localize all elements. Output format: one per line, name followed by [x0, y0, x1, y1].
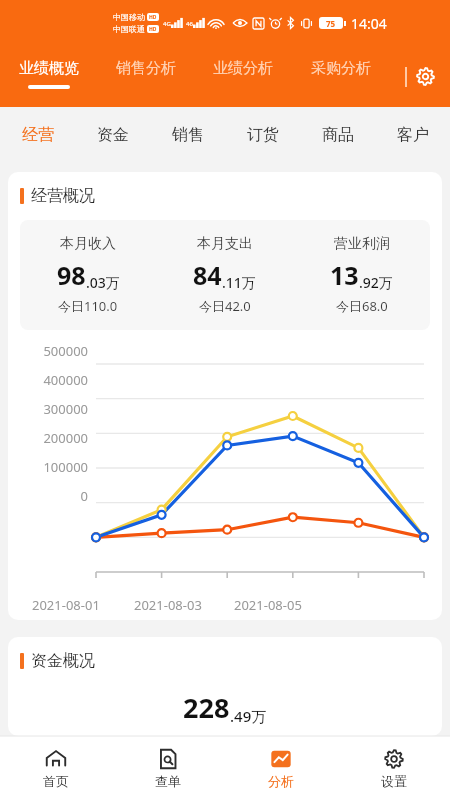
button[interactable]: 营业利润: [293, 220, 430, 330]
button[interactable]: 首页: [0, 736, 112, 800]
staticText: 设置: [381, 773, 407, 789]
staticText: 业绩概览: [19, 59, 79, 78]
staticText: 销售: [172, 125, 204, 145]
staticText: 订货: [247, 125, 279, 145]
button[interactable]: 采购分析: [292, 45, 390, 107]
staticText: 0: [80, 487, 88, 505]
staticText: 400000: [43, 371, 88, 389]
button[interactable]: 业绩分析: [194, 45, 292, 107]
staticText: 4G: [163, 20, 171, 28]
button[interactable]: 分析: [224, 736, 337, 800]
staticText: .49万: [230, 706, 267, 726]
staticText: 营业利润: [334, 235, 390, 253]
button[interactable]: 资金: [75, 107, 150, 162]
button[interactable]: 经营: [0, 107, 75, 162]
staticText: HD: [149, 26, 157, 33]
staticText: 中国移动: [113, 12, 145, 22]
staticText: 分析: [268, 773, 294, 789]
button[interactable]: 业绩概览: [0, 45, 97, 107]
staticText: 首页: [43, 773, 69, 789]
staticText: 查单: [155, 773, 181, 789]
staticText: 98: [57, 258, 86, 292]
staticText: 客户: [397, 125, 429, 145]
staticText: 14:04: [351, 14, 387, 33]
button[interactable]: 订货: [225, 107, 300, 162]
staticText: 84: [193, 258, 222, 292]
staticText: 13: [330, 258, 359, 292]
button[interactable]: 查单: [112, 736, 224, 800]
button[interactable]: 设置: [390, 45, 450, 107]
button[interactable]: 本月收入: [20, 220, 156, 330]
staticText: 100000: [43, 458, 88, 476]
staticText: 300000: [43, 400, 88, 418]
staticText: 本月收入: [60, 235, 116, 253]
staticText: 2021-08-03: [134, 596, 202, 614]
staticText: 经营概况: [31, 186, 95, 206]
staticText: 资金概况: [31, 651, 95, 671]
staticText: 商品: [322, 125, 354, 145]
staticText: 2021-08-05: [234, 596, 302, 614]
button[interactable]: 设置: [337, 736, 450, 800]
staticText: 采购分析: [311, 59, 371, 78]
staticText: 2021-08-01: [32, 596, 100, 614]
button[interactable]: 销售: [150, 107, 225, 162]
button[interactable]: 商品: [300, 107, 375, 162]
button[interactable]: 本月支出: [156, 220, 293, 330]
staticText: 75: [326, 18, 336, 29]
button[interactable]: 销售分析: [97, 45, 194, 107]
staticText: 本月支出: [197, 235, 253, 253]
staticText: 228: [183, 689, 230, 726]
staticText: 经营: [22, 125, 54, 145]
staticText: .03万: [86, 273, 120, 292]
staticText: .11万: [222, 273, 256, 292]
staticText: 今日110.0: [58, 297, 118, 315]
button[interactable]: 客户: [375, 107, 450, 162]
staticText: HD: [149, 14, 157, 21]
staticText: 今日42.0: [199, 297, 251, 315]
staticText: 资金: [97, 125, 129, 145]
staticText: 中国联通: [113, 24, 145, 34]
staticText: 500000: [43, 342, 88, 360]
staticText: 今日68.0: [336, 297, 388, 315]
staticText: 46: [186, 20, 193, 28]
staticText: .92万: [359, 273, 393, 292]
staticText: 业绩分析: [213, 59, 273, 78]
staticText: 销售分析: [116, 59, 176, 78]
staticText: 200000: [43, 429, 88, 447]
